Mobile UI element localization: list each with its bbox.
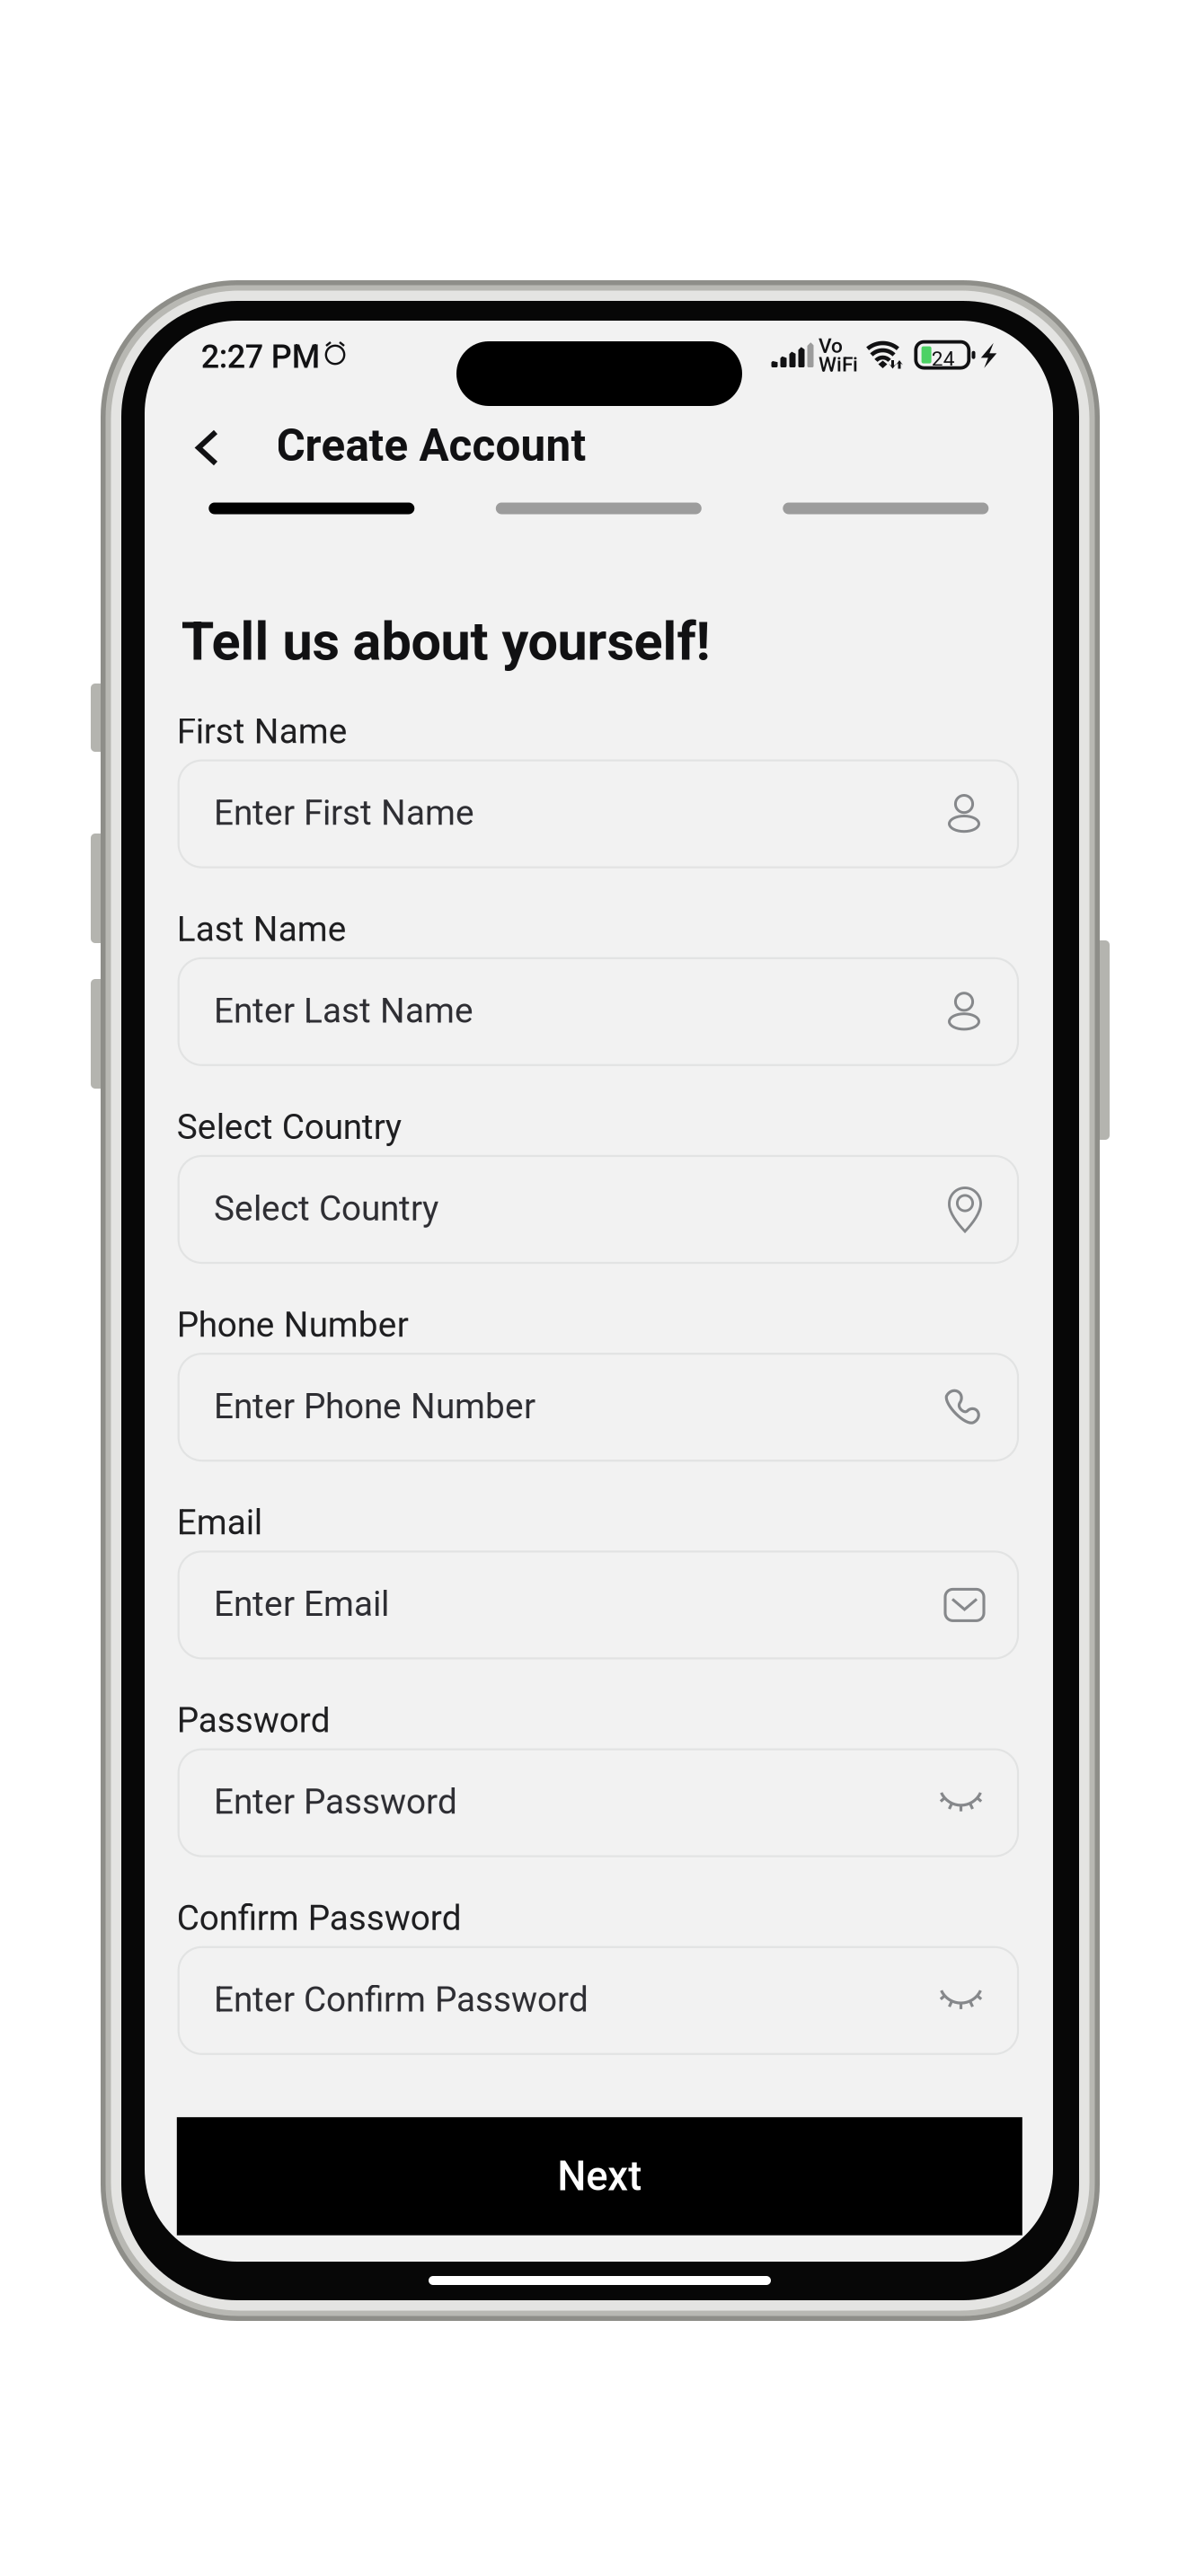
- staticText: Enter Password: [214, 1781, 457, 1822]
- button[interactable]: Enter Last Name: [179, 958, 1018, 1065]
- button[interactable]: Back: [169, 415, 245, 481]
- staticText: 24: [932, 347, 955, 371]
- staticText: Enter Last Name: [214, 990, 474, 1031]
- button[interactable]: Select Country: [179, 1156, 1018, 1263]
- staticText: Select Country: [214, 1188, 439, 1229]
- button[interactable]: Enter Email: [179, 1552, 1018, 1658]
- button[interactable]: Enter First Name: [179, 760, 1018, 867]
- staticText: Enter Email: [214, 1584, 389, 1624]
- staticText: Enter Phone Number: [214, 1386, 536, 1427]
- staticText: Next: [557, 2152, 642, 2200]
- button[interactable]: Enter Phone Number: [179, 1354, 1018, 1461]
- staticText: Vo: [819, 334, 843, 358]
- staticText: Select Country: [177, 1107, 401, 1147]
- staticText: Phone Number: [177, 1304, 409, 1345]
- staticText: WiFi: [819, 353, 858, 376]
- staticText: First Name: [177, 711, 347, 752]
- button[interactable]: Next: [177, 2117, 1022, 2235]
- button[interactable]: Enter Confirm Password: [179, 1947, 1018, 2054]
- staticText: Last Name: [177, 909, 347, 950]
- staticText: Create Account: [276, 420, 586, 472]
- staticText: Enter Confirm Password: [214, 1979, 589, 2020]
- staticText: Enter First Name: [214, 793, 474, 833]
- staticText: Confirm Password: [177, 1898, 462, 1938]
- staticText: 2:27 PM: [201, 338, 320, 376]
- staticText: Email: [177, 1502, 262, 1543]
- button[interactable]: Enter Password: [179, 1749, 1018, 1856]
- staticText: Password: [177, 1700, 330, 1741]
- staticText: Tell us about yourself!: [181, 610, 710, 673]
